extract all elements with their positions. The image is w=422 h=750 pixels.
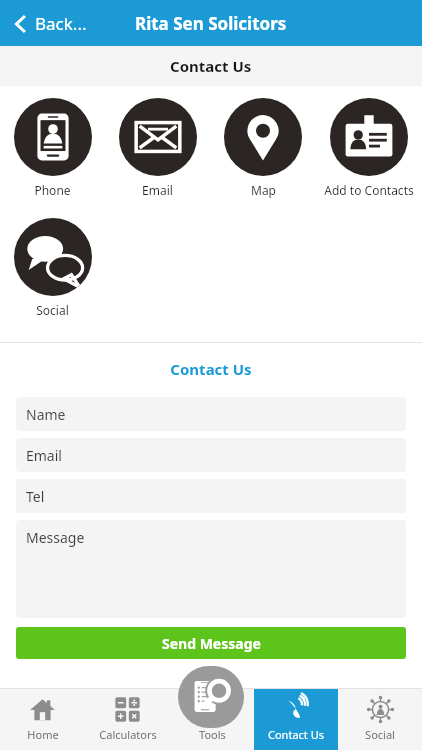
staticText: Contact Us (0, 359, 422, 379)
button[interactable]: Phone (0, 96, 105, 200)
staticText: Social (365, 727, 395, 742)
button[interactable]: Social (338, 688, 422, 750)
staticText: Home (27, 727, 59, 742)
staticText: Tel (26, 487, 45, 506)
button[interactable]: Message (16, 520, 406, 618)
staticText: Contact Us (170, 56, 252, 76)
button[interactable]: Tools (178, 666, 244, 728)
staticText: Email (26, 446, 62, 465)
staticText: Add to Contacts (324, 182, 414, 198)
other: Add to Contacts (330, 98, 408, 176)
button[interactable]: Tel (16, 479, 406, 513)
staticText: Social (36, 302, 69, 318)
staticText: Map (251, 182, 276, 198)
staticText: Calculators (99, 727, 157, 742)
button[interactable]: Tools (170, 688, 254, 750)
staticText: Message (26, 528, 85, 547)
other: Map (224, 98, 302, 176)
button[interactable]: Back... (8, 8, 93, 39)
staticText: Contact Us (268, 727, 324, 742)
other: Phone (14, 98, 92, 176)
staticText: Name (26, 405, 66, 424)
staticText: Phone (34, 182, 71, 198)
button[interactable]: Home (0, 688, 85, 750)
staticText: Email (142, 182, 173, 198)
staticText: Back... (35, 12, 87, 35)
button[interactable]: Add to Contacts (316, 96, 422, 200)
button[interactable]: Name (16, 397, 406, 431)
staticText: Rita Sen Solicitors (135, 12, 287, 35)
other: Email (119, 98, 197, 176)
other: Social (14, 218, 92, 296)
button[interactable]: Send Message (16, 627, 406, 659)
button[interactable]: Map (210, 96, 316, 200)
button[interactable]: Social (0, 216, 105, 320)
button[interactable]: Calculators (85, 688, 170, 750)
staticText: Send Message (162, 634, 261, 653)
button[interactable]: Email (16, 438, 406, 472)
staticText: Tools (199, 727, 226, 742)
button[interactable]: Contact Us (254, 688, 338, 750)
button[interactable]: Email (105, 96, 210, 200)
